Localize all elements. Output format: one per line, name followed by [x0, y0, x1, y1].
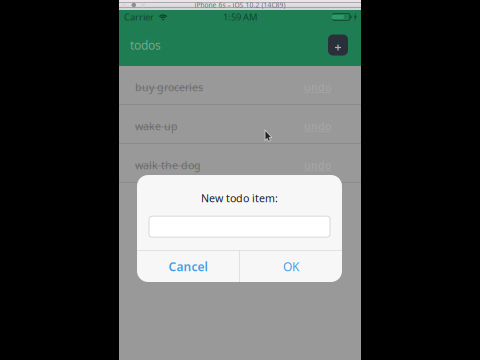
staticText: walk the dog [135, 158, 201, 172]
button[interactable]: walk the dog [119, 144, 361, 183]
button[interactable]: buy groceries [119, 66, 361, 105]
staticText: New todo item: [201, 191, 278, 205]
staticText: OK [283, 258, 299, 274]
staticText: 1:59 AM [223, 11, 257, 23]
staticText: wake up [135, 119, 178, 133]
staticText: undo [304, 80, 331, 94]
staticText: todos [130, 37, 161, 53]
staticText: buy groceries [135, 80, 203, 94]
button[interactable]: OK [240, 251, 342, 282]
staticText: iPhone 6s – iOS 10.2 (14C89) [194, 1, 285, 9]
staticText: Carrier [124, 11, 154, 23]
button[interactable]: wake up [119, 105, 361, 144]
staticText: undo [304, 158, 331, 172]
staticText: undo [304, 119, 331, 133]
button[interactable]: Cancel [137, 251, 239, 282]
button[interactable]: Add todo item [328, 34, 348, 55]
staticText: Cancel [169, 258, 208, 274]
